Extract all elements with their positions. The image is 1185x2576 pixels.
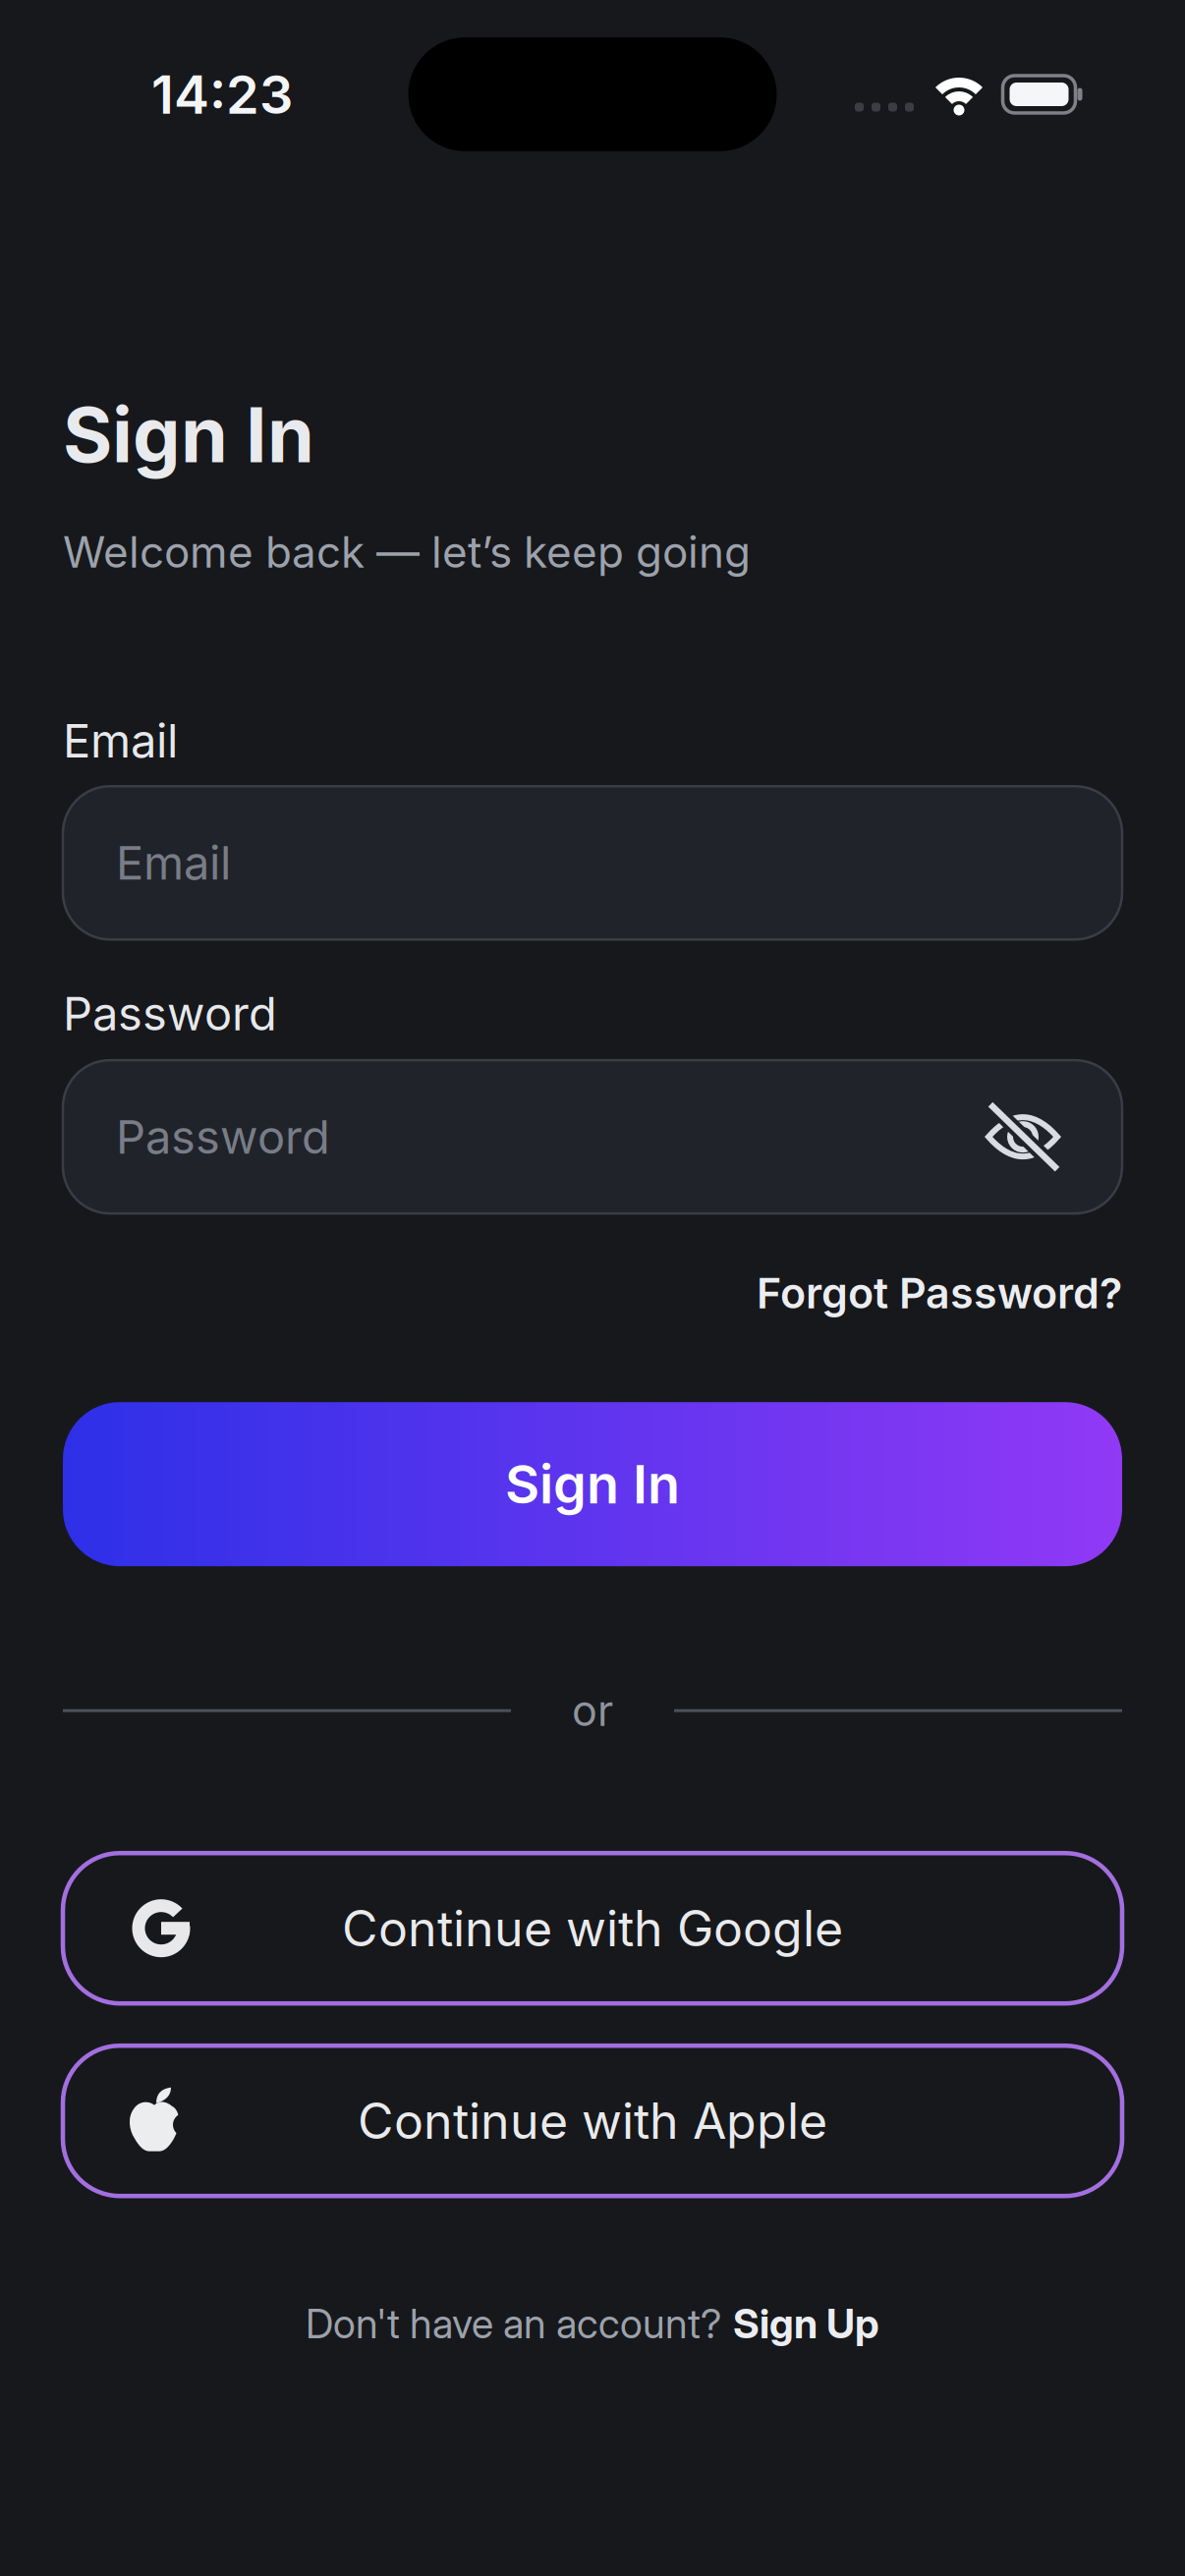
staticText: Email [63,713,178,769]
button[interactable]: Sign In [63,1402,1122,1566]
staticText: Email [116,835,231,891]
button[interactable]: Continue with Google [63,1853,1122,2003]
staticText: Sign In [505,1452,680,1516]
button[interactable]: Don't have an account? [306,2299,879,2348]
staticText: Welcome back — let’s keep going [63,526,751,578]
staticText: Sign In [63,389,314,481]
button[interactable]: Forgot Password? [757,1267,1122,1319]
staticText: Continue with Apple [358,2091,827,2150]
button[interactable]: Continue with Apple [63,2046,1122,2196]
staticText: Sign Up [733,2299,879,2348]
staticText: 14:23 [151,62,293,126]
staticText: or [572,1685,613,1736]
staticText: Password [116,1109,330,1165]
staticText: Continue with Google [342,1898,843,1958]
staticText: Forgot Password? [757,1267,1122,1319]
staticText: Don't have an account? [306,2299,721,2348]
staticText: Password [63,986,277,1042]
button[interactable]: Show password [985,1105,1061,1168]
